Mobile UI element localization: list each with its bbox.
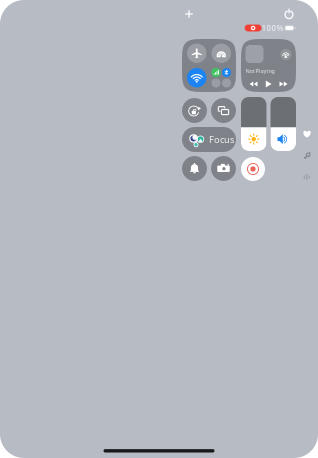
staticText: Not Playing <box>245 67 274 74</box>
button[interactable]: Airplane Mode <box>187 43 206 63</box>
button[interactable]: Now Playing <box>300 148 314 162</box>
button[interactable]: Screen Recording <box>241 157 265 181</box>
button[interactable]: AirDrop <box>211 43 231 63</box>
button[interactable]: AirPlay <box>280 49 291 60</box>
button[interactable]: Wi-Fi <box>187 68 206 87</box>
button[interactable]: Add a Control <box>182 7 196 21</box>
button[interactable]: Home Controls <box>300 170 314 184</box>
button[interactable]: Favorites <box>300 127 314 141</box>
button[interactable]: Fast Forward <box>279 80 287 88</box>
button[interactable]: Power <box>282 7 296 21</box>
button[interactable] <box>270 97 296 151</box>
button[interactable]: Rotation Lock <box>182 98 207 123</box>
button[interactable]: Cellular Data <box>211 68 220 77</box>
button[interactable]: Rewind <box>249 80 257 88</box>
staticText: 100% <box>262 23 284 33</box>
button[interactable]: Personal Hotspot <box>211 78 220 87</box>
button[interactable]: Camera <box>211 156 236 181</box>
staticText: Focus <box>209 133 234 146</box>
button[interactable] <box>241 97 266 151</box>
button[interactable]: Satellite <box>222 78 231 87</box>
button[interactable]: Focus <box>182 127 236 152</box>
button[interactable]: Screen Mirroring <box>211 98 236 123</box>
button[interactable]: Silent Mode <box>182 156 207 181</box>
button[interactable]: Bluetooth <box>222 68 231 77</box>
button[interactable]: Play <box>265 81 272 87</box>
